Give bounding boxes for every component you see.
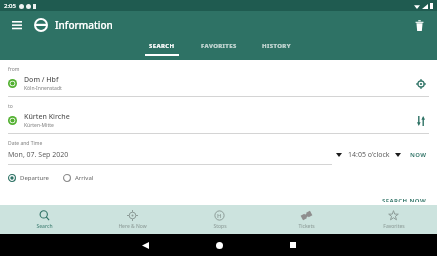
staticText: Kürten-Mitte <box>24 122 54 129</box>
staticText: Mon, 07. Sep 2020 <box>8 150 69 160</box>
button[interactable]: Pick time <box>394 151 402 159</box>
staticText: to <box>8 103 13 110</box>
button[interactable]: HISTORY <box>255 40 297 58</box>
button[interactable]: Open navigation menu <box>8 16 26 34</box>
button[interactable]: Arrival <box>63 172 100 184</box>
staticText: Here & Now <box>118 223 147 230</box>
button[interactable]: Mon, 07. Sep 2020 <box>8 150 335 160</box>
button[interactable]: SEARCH NOW <box>372 194 437 205</box>
staticText: Köln-Innenstadt <box>24 85 62 92</box>
button[interactable]: Home <box>207 234 231 256</box>
staticText: Information <box>55 18 113 32</box>
staticText: Search <box>36 223 53 230</box>
button[interactable]: Search <box>0 207 88 233</box>
button[interactable]: FAVORITES <box>197 40 241 58</box>
staticText: Date and Time <box>8 140 43 147</box>
staticText: Dom / Hbf <box>24 75 59 85</box>
staticText: FAVORITES <box>201 42 237 50</box>
staticText: Stops <box>213 223 227 230</box>
button[interactable]: Here & Now <box>88 207 176 233</box>
staticText: SEARCH NOW <box>382 197 427 202</box>
button[interactable]: Delete <box>409 15 429 35</box>
button[interactable]: Tickets <box>263 207 350 233</box>
button[interactable]: Recent apps <box>281 234 305 256</box>
staticText: HISTORY <box>262 42 291 50</box>
button[interactable]: Back <box>133 234 157 256</box>
button[interactable]: Favorites <box>350 207 437 233</box>
staticText: Kürten Kirche <box>24 112 70 122</box>
staticText: NOW <box>410 151 427 159</box>
button[interactable]: Dom / Hbf <box>8 75 413 92</box>
button[interactable]: SEARCH <box>141 40 183 58</box>
staticText: Tickets <box>298 223 315 230</box>
button[interactable]: 14:05 o'clock <box>348 150 390 160</box>
button[interactable]: NOW <box>408 149 429 161</box>
staticText: SEARCH <box>149 42 175 50</box>
button[interactable]: Use current location <box>413 76 429 92</box>
staticText: 2:05 <box>4 2 16 10</box>
staticText: H <box>217 212 222 220</box>
staticText: Favorites <box>383 223 405 230</box>
staticText: from <box>8 66 20 73</box>
staticText: Departure <box>20 174 49 182</box>
button[interactable]: Pick date <box>335 151 343 159</box>
button[interactable]: H <box>176 207 263 233</box>
button[interactable]: Swap origin and destination <box>413 113 429 129</box>
button[interactable]: Kürten Kirche <box>8 112 413 129</box>
staticText: 14:05 o'clock <box>348 150 390 160</box>
button[interactable]: Departure <box>8 172 55 184</box>
staticText: Arrival <box>75 174 94 182</box>
